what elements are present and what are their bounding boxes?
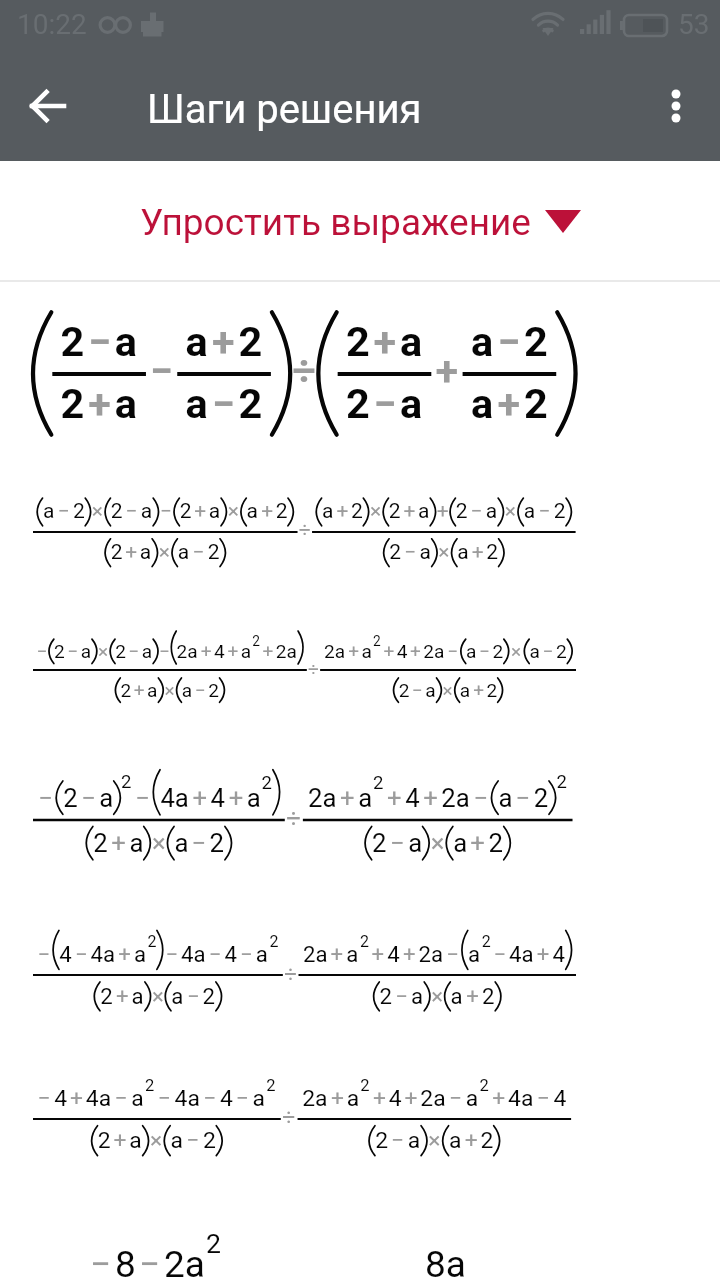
staticText: Упростить выражение (140, 201, 531, 244)
button[interactable]: Back (16, 70, 88, 142)
button[interactable]: Упростить выражение (0, 161, 720, 280)
button[interactable]: More options (636, 70, 708, 142)
staticText: Шаги решения (147, 86, 422, 133)
